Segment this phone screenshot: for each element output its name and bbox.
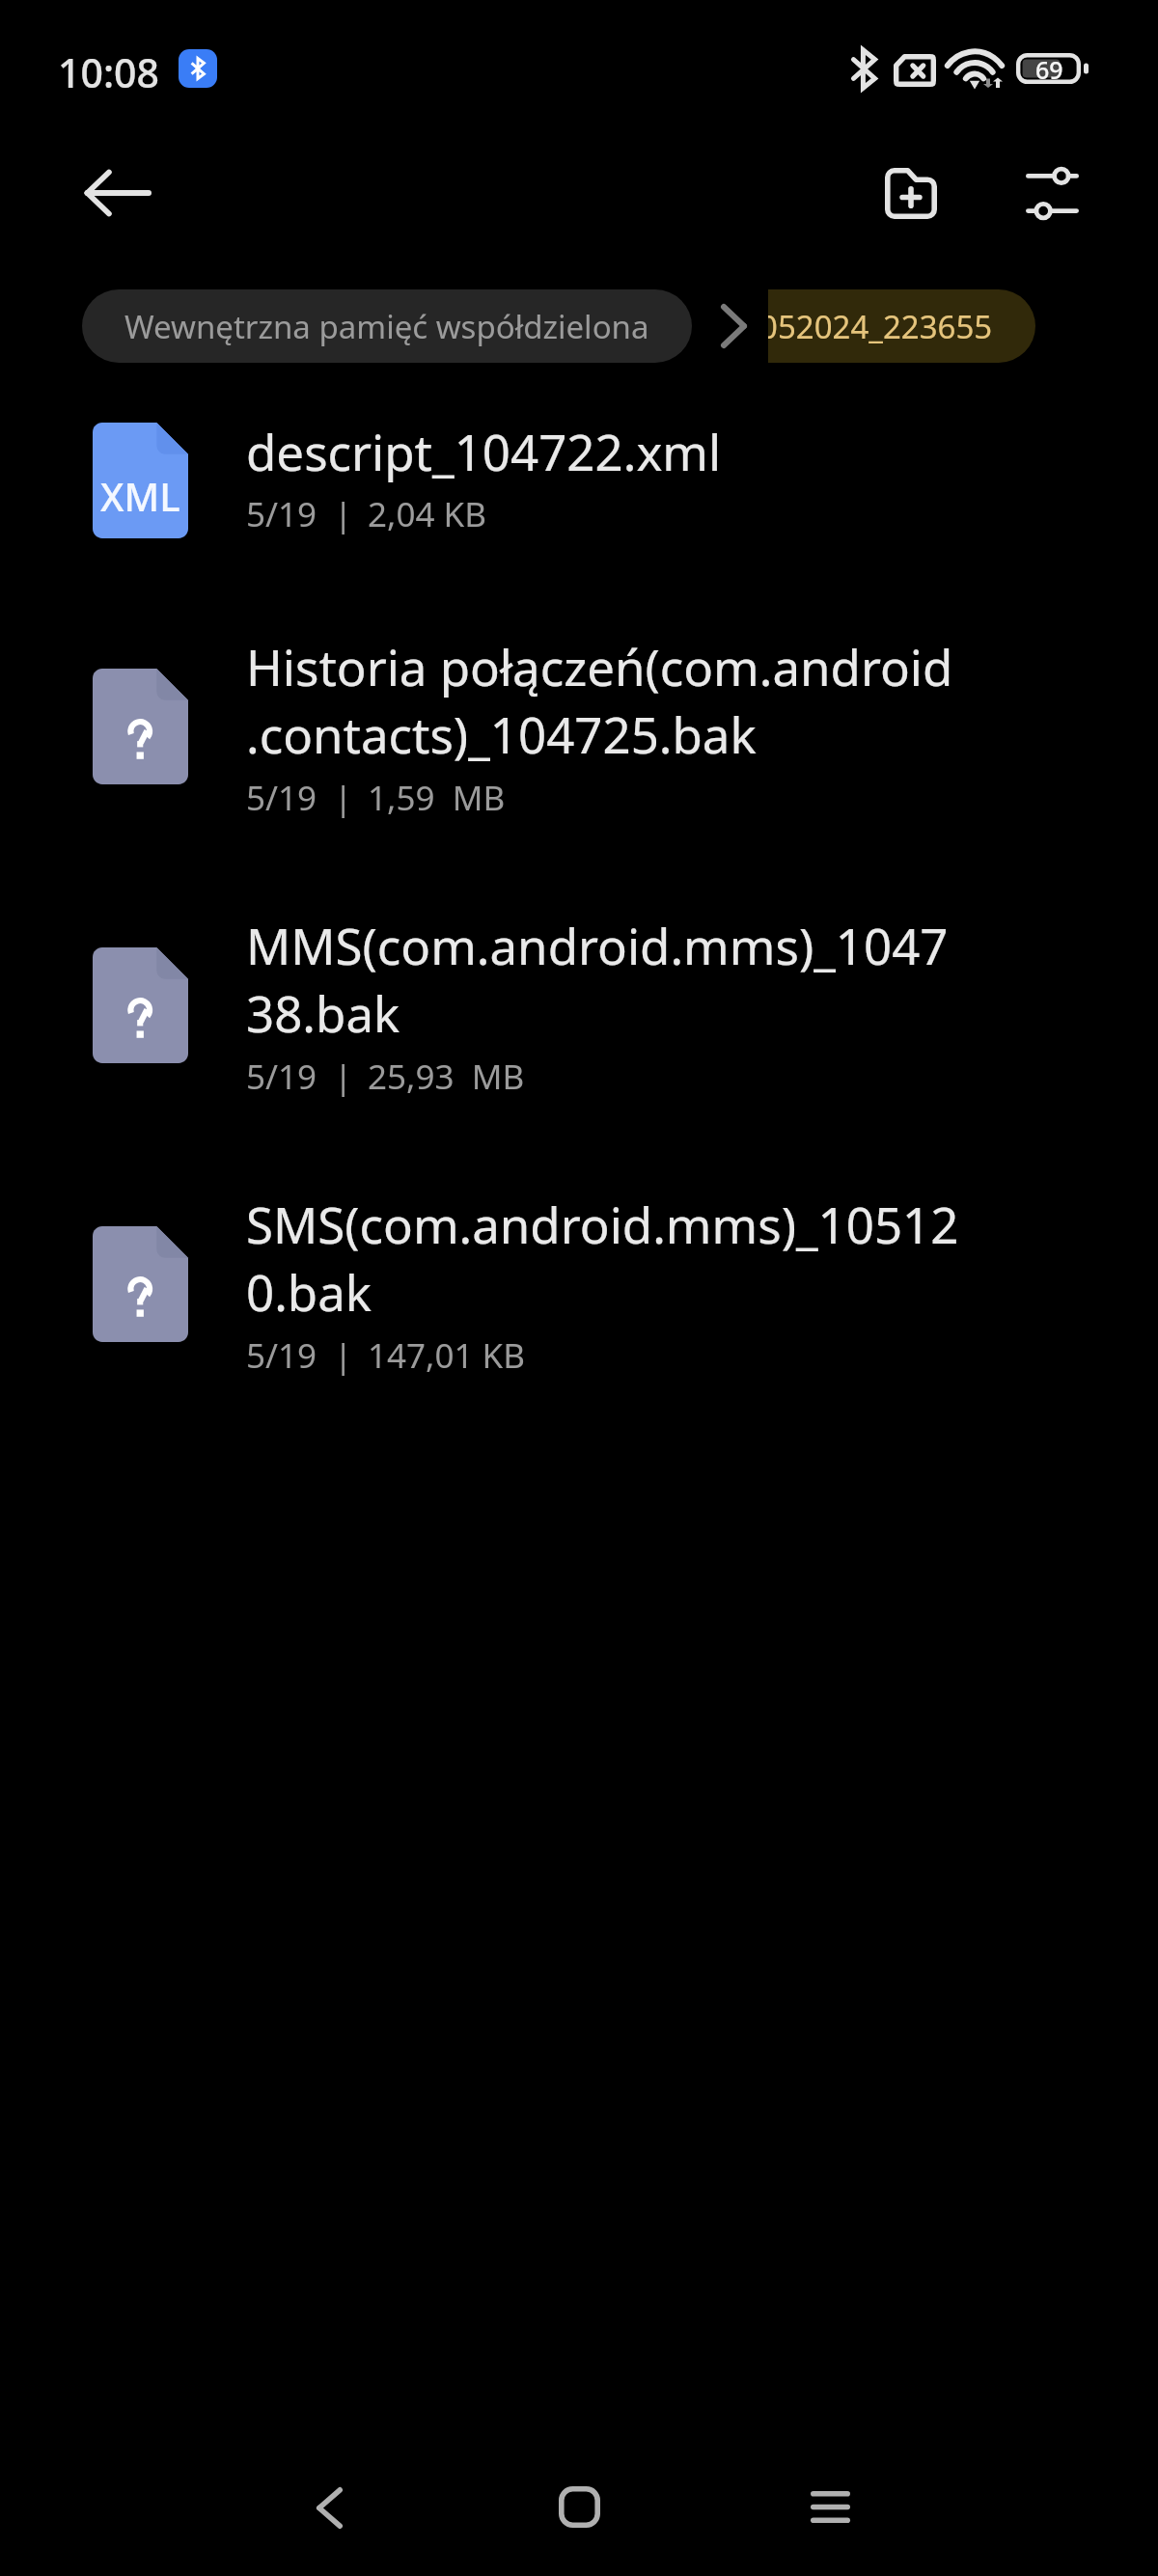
staticText: XML — [100, 470, 180, 522]
button[interactable]: Wewnętrzna pamięć współdzielona — [82, 289, 692, 363]
button[interactable]: Sort and view options — [994, 135, 1110, 251]
staticText: 5/19 — [246, 1054, 317, 1100]
staticText: 1,59 MB — [368, 775, 506, 821]
staticText: | — [334, 1054, 353, 1100]
staticText: | — [334, 491, 353, 537]
button[interactable]: New folder — [853, 135, 969, 251]
staticText: 69 — [1035, 53, 1063, 84]
staticText: 052024_223655 — [768, 305, 993, 348]
staticText: 2,04 KB — [368, 491, 486, 537]
button[interactable]: XML — [0, 358, 1158, 603]
staticText: SMS(com.android.mms)_105120.bak — [246, 1191, 965, 1326]
staticText: | — [334, 775, 353, 821]
staticText: 10:08 — [58, 45, 159, 99]
staticText: 5/19 — [246, 775, 317, 821]
staticText: 5/19 — [246, 491, 317, 537]
staticText: Historia połączeń(com.android.contacts)_… — [246, 633, 965, 768]
staticText: | — [334, 1332, 353, 1379]
button[interactable]: Back — [60, 135, 176, 251]
staticText: Wewnętrzna pamięć współdzielona — [124, 305, 649, 348]
button[interactable]: Back — [271, 2450, 387, 2565]
staticText: descript_104722.xml — [246, 418, 722, 484]
staticText: MMS(com.android.mms)_104738.bak — [246, 912, 965, 1047]
button[interactable]: 052024_223655 — [768, 289, 1035, 363]
staticText: 5/19 — [246, 1332, 317, 1379]
button[interactable]: Home — [521, 2449, 637, 2564]
staticText: 25,93 MB — [368, 1054, 525, 1100]
button[interactable]: SMS(com.android.mms)_105120.bak — [0, 1144, 1158, 1423]
button[interactable]: MMS(com.android.mms)_104738.bak — [0, 865, 1158, 1144]
button[interactable]: Recent apps — [772, 2449, 888, 2564]
staticText: 147,01 KB — [368, 1332, 525, 1379]
button[interactable]: Historia połączeń(com.android.contacts)_… — [0, 587, 1158, 865]
